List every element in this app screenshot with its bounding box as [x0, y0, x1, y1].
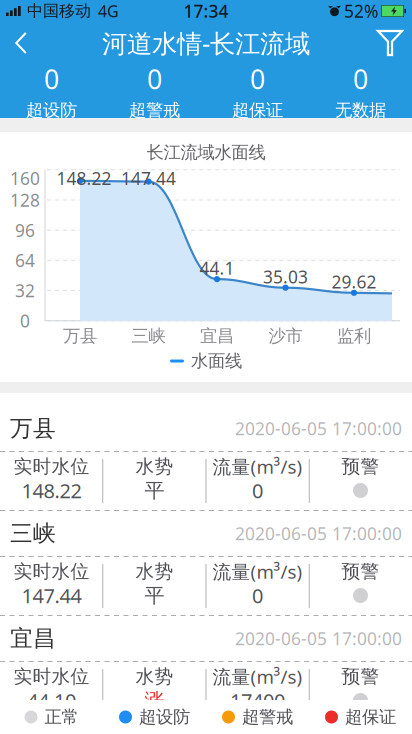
staticText: 实时水位: [13, 560, 89, 583]
staticText: 平: [144, 478, 164, 503]
staticText: 超保证: [232, 100, 283, 121]
staticText: 沙市: [268, 325, 302, 347]
staticText: 水势: [135, 455, 173, 478]
staticText: 2020-06-05 17:00:00: [235, 522, 402, 545]
staticText: 0: [252, 582, 263, 609]
staticText: 148.22: [56, 167, 111, 190]
staticText: 52%: [344, 0, 378, 22]
staticText: 万县: [10, 415, 56, 442]
staticText: 44.10: [27, 687, 76, 714]
staticText: 流量(m³/s): [212, 454, 302, 479]
staticText: 44.1: [199, 257, 234, 280]
staticText: 预警: [341, 665, 379, 688]
staticText: 超设防: [139, 706, 190, 728]
staticText: 160: [10, 167, 40, 190]
staticText: 0: [250, 61, 265, 96]
staticText: 64: [15, 249, 35, 272]
staticText: 0: [252, 477, 263, 504]
staticText: 超警戒: [242, 706, 293, 728]
button[interactable]: 0: [0, 64, 103, 118]
staticText: 平: [144, 583, 164, 608]
staticText: 监利: [337, 325, 371, 347]
staticText: 万县: [63, 325, 97, 347]
button[interactable]: 0: [206, 64, 309, 118]
button[interactable]: 0: [309, 64, 412, 118]
staticText: 2020-06-05 17:00:00: [235, 627, 402, 650]
staticText: 三峡: [131, 325, 165, 347]
staticText: 实时水位: [13, 455, 89, 478]
staticText: 0: [20, 309, 30, 332]
staticText: 29.62: [331, 270, 376, 293]
staticText: 0: [44, 61, 59, 96]
button[interactable]: Filter: [372, 22, 412, 64]
staticText: 4G: [98, 0, 119, 22]
staticText: 水势: [135, 560, 173, 583]
staticText: 正常: [44, 706, 78, 728]
staticText: 预警: [341, 560, 379, 583]
staticText: 水面线: [191, 350, 242, 372]
staticText: 中国移动: [27, 1, 91, 21]
staticText: 0: [147, 61, 162, 96]
staticText: 2020-06-05 17:00:00: [235, 417, 402, 440]
button[interactable]: Back: [0, 22, 40, 64]
staticText: 宜昌: [200, 325, 234, 347]
staticText: 147.44: [21, 582, 81, 609]
staticText: 超保证: [345, 706, 396, 728]
staticText: 147.44: [121, 167, 176, 190]
staticText: 超警戒: [129, 100, 180, 121]
button[interactable]: 0: [103, 64, 206, 118]
staticText: 128: [10, 188, 40, 211]
staticText: 水势: [135, 665, 173, 688]
staticText: 宜昌: [10, 625, 56, 652]
staticText: 流量(m³/s): [212, 664, 302, 689]
staticText: 河道水情-长江流域: [102, 26, 310, 60]
staticText: 148.22: [21, 477, 81, 504]
staticText: 长江流域水面线: [146, 142, 265, 163]
staticText: 96: [15, 219, 35, 242]
staticText: 流量(m³/s): [212, 559, 302, 584]
staticText: 17:34: [183, 0, 228, 22]
staticText: 实时水位: [13, 665, 89, 688]
staticText: 17400: [230, 687, 285, 714]
staticText: 三峡: [10, 520, 56, 547]
staticText: 35.03: [263, 265, 308, 288]
staticText: 无数据: [335, 100, 386, 121]
staticText: 预警: [341, 455, 379, 478]
staticText: 0: [353, 61, 368, 96]
staticText: 32: [15, 279, 35, 302]
staticText: 涨: [144, 688, 164, 713]
staticText: 超设防: [26, 100, 77, 121]
